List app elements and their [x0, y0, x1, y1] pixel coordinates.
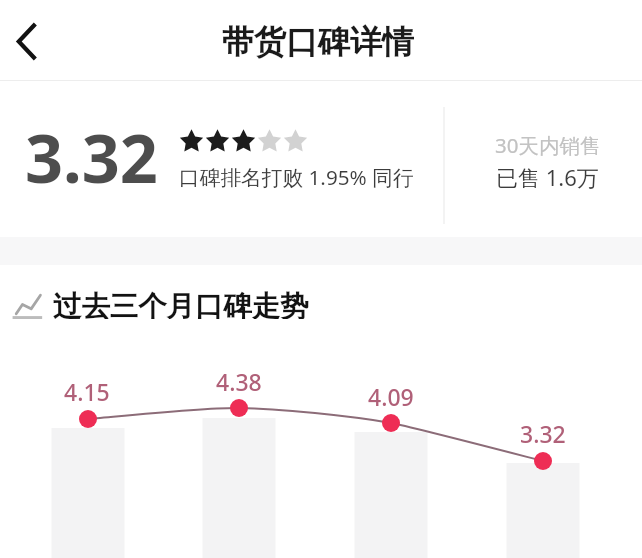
staticText: 3.32 — [25, 112, 158, 203]
staticText: 过去三个月口碑走势 — [53, 289, 309, 319]
staticText: 4.09 — [368, 381, 414, 412]
staticText: 4.38 — [216, 366, 262, 397]
staticText: 带货口碑详情 — [222, 22, 414, 62]
button[interactable]: 30天内销售 — [445, 90, 642, 230]
button[interactable]: Back — [1, 8, 53, 74]
button[interactable]: 3.32 — [0, 90, 444, 230]
staticText: 口碑排名打败 1.95% 同行 — [179, 163, 414, 191]
staticText: 30天内销售 — [495, 131, 601, 159]
button[interactable]: 过去三个月口碑走势 — [12, 289, 309, 319]
staticText: 3.32 — [520, 418, 566, 449]
staticText: 4.15 — [64, 376, 110, 407]
staticText: 已售 1.6万 — [496, 162, 599, 192]
